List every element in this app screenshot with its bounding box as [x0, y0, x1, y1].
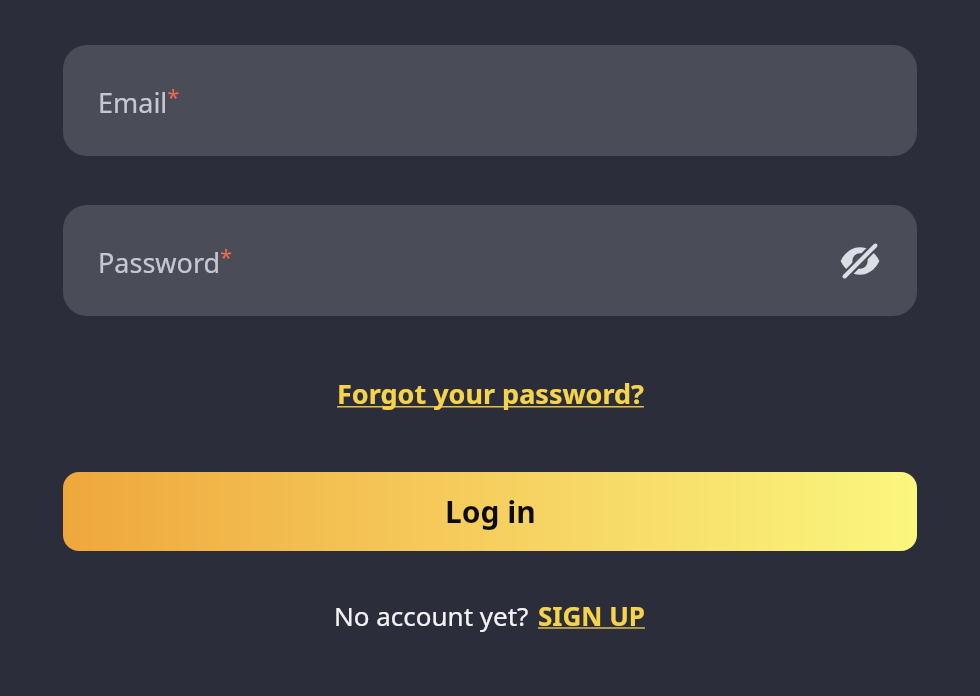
button[interactable]: Show password: [833, 234, 887, 288]
staticText: Password*: [98, 241, 233, 281]
button[interactable]: SIGN UP: [536, 596, 647, 635]
button[interactable]: Email*: [63, 45, 917, 156]
button[interactable]: Forgot your password?: [331, 371, 650, 416]
staticText: Email*: [98, 81, 180, 121]
button[interactable]: Log in: [63, 472, 917, 551]
staticText: No account yet?: [334, 598, 536, 633]
staticText: Log in: [445, 491, 536, 532]
button[interactable]: Password*: [63, 205, 917, 316]
